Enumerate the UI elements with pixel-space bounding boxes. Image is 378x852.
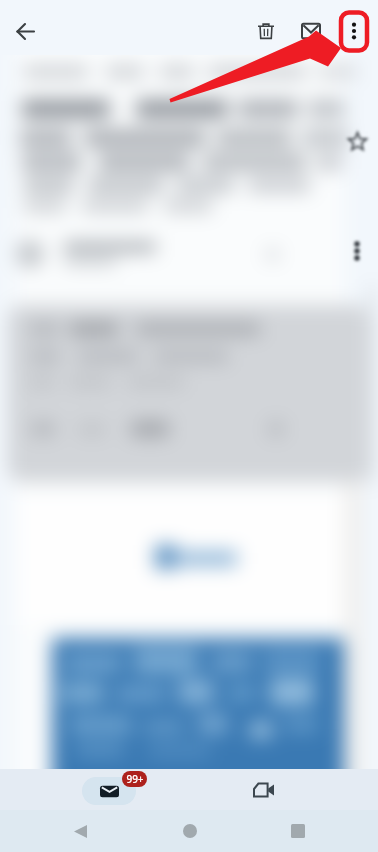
button[interactable]: Meet bbox=[206, 769, 322, 810]
button[interactable]: Mail bbox=[52, 769, 168, 810]
button[interactable]: Back bbox=[60, 810, 100, 852]
button[interactable]: Star bbox=[347, 131, 367, 151]
button[interactable]: More options for this message bbox=[347, 241, 367, 261]
button[interactable]: Home bbox=[170, 810, 210, 852]
button[interactable]: More options bbox=[334, 11, 374, 51]
button[interactable]: Recent apps bbox=[278, 810, 318, 852]
staticText: 99+ bbox=[126, 772, 144, 786]
button[interactable]: Mark as unread bbox=[291, 11, 331, 51]
button[interactable]: Delete bbox=[246, 11, 286, 51]
button[interactable]: Back bbox=[5, 11, 45, 51]
